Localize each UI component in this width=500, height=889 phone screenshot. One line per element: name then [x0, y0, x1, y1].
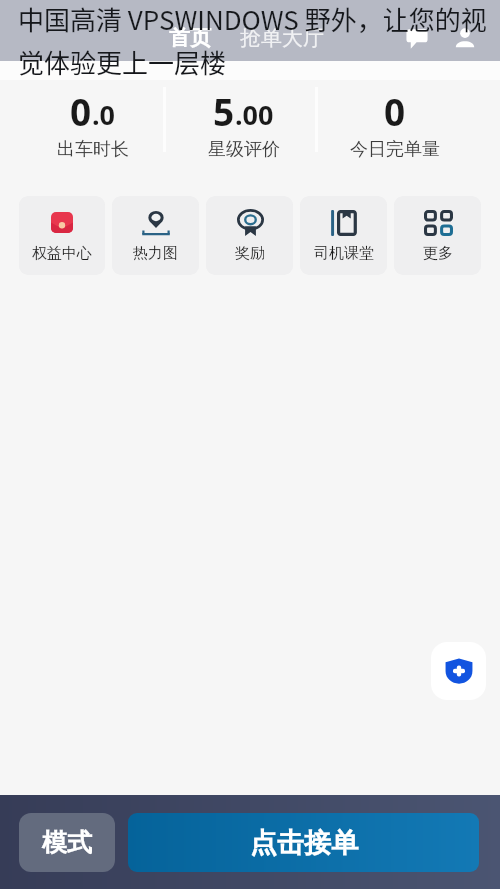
- button[interactable]: 司机课堂: [300, 196, 387, 275]
- button[interactable]: 点击接单: [128, 813, 479, 872]
- button[interactable]: 5: [168, 86, 319, 161]
- button[interactable]: 模式: [19, 813, 115, 872]
- button[interactable]: 热力图: [112, 196, 199, 275]
- staticText: 奖励: [235, 244, 265, 263]
- button[interactable]: 更多: [394, 196, 481, 275]
- staticText: 点击接单: [250, 826, 358, 860]
- button[interactable]: Safety: [431, 642, 486, 700]
- staticText: 今日完单量: [350, 138, 440, 161]
- staticText: 星级评价: [208, 138, 280, 161]
- staticText: 0: [384, 86, 406, 136]
- button[interactable]: 权益中心: [19, 196, 105, 275]
- button[interactable]: 首页: [169, 25, 211, 51]
- staticText: .00: [235, 96, 274, 133]
- button[interactable]: 0: [319, 86, 470, 161]
- button[interactable]: Profile: [447, 20, 483, 56]
- staticText: 更多: [423, 244, 453, 263]
- staticText: .0: [92, 96, 116, 133]
- button[interactable]: 0: [18, 86, 168, 161]
- staticText: 司机课堂: [314, 244, 374, 263]
- staticText: 首页: [169, 25, 211, 51]
- button[interactable]: 奖励: [206, 196, 293, 275]
- staticText: 模式: [42, 827, 92, 858]
- staticText: 0: [70, 86, 92, 136]
- button[interactable]: 抢单大厅: [240, 25, 324, 51]
- button[interactable]: Messages: [399, 20, 435, 56]
- staticText: 抢单大厅: [240, 25, 324, 51]
- staticText: 5: [213, 86, 235, 136]
- staticText: 出车时长: [57, 138, 129, 161]
- staticText: 热力图: [133, 244, 178, 263]
- staticText: 权益中心: [32, 244, 92, 263]
- staticText: 中国高清 VPSWINDOWS 野外，让您的视觉体验更上一层楼: [18, 0, 499, 80]
